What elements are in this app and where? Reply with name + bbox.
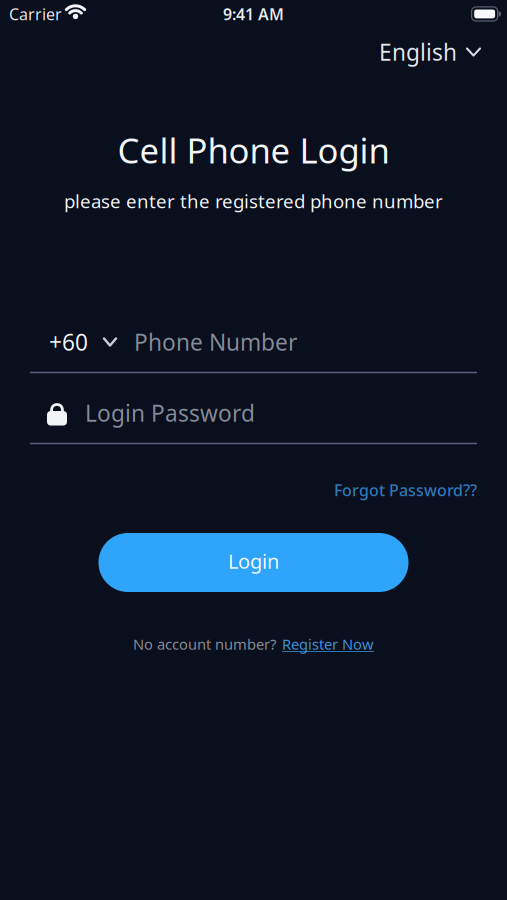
- button[interactable]: English: [379, 37, 480, 67]
- button[interactable]: Forgot Password??: [334, 479, 477, 501]
- staticText: Login Password: [85, 398, 255, 428]
- staticText: 9:41 AM: [223, 3, 284, 25]
- staticText: No account number?: [133, 634, 276, 654]
- staticText: Login: [228, 548, 279, 574]
- staticText: Forgot Password??: [334, 479, 477, 501]
- staticText: English: [379, 37, 457, 67]
- button[interactable]: Login: [98, 533, 408, 592]
- staticText: Register Now: [282, 634, 374, 654]
- staticText: Carrier: [9, 3, 62, 25]
- staticText: Cell Phone Login: [117, 127, 389, 173]
- button[interactable]: Register Now: [282, 634, 374, 654]
- button[interactable]: +60: [49, 327, 116, 357]
- staticText: please enter the registered phone number: [64, 189, 443, 213]
- staticText: Phone Number: [134, 327, 297, 357]
- staticText: +60: [49, 327, 88, 357]
